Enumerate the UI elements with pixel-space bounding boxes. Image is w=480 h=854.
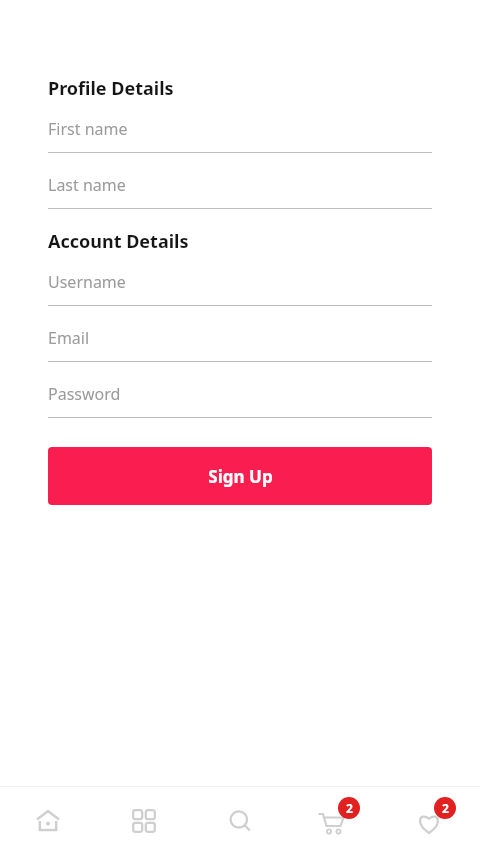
button[interactable]: Password [48, 382, 432, 418]
button[interactable]: First name [48, 117, 432, 153]
button[interactable]: Sign Up [48, 447, 432, 505]
button[interactable]: Home [0, 787, 96, 854]
staticText: Account Details [48, 229, 189, 254]
staticText: 2 [442, 800, 449, 816]
button[interactable]: Search [192, 787, 288, 854]
button[interactable]: Username [48, 270, 432, 306]
button[interactable]: Last name [48, 173, 432, 209]
button[interactable]: Favorites, 2 items [384, 787, 480, 854]
button[interactable]: Cart, 2 items [288, 787, 384, 854]
staticText: Email [48, 327, 90, 349]
staticText: Username [48, 271, 126, 293]
button[interactable]: Categories [96, 787, 192, 854]
staticText: 2 [346, 800, 353, 816]
staticText: Last name [48, 174, 126, 196]
button[interactable]: Email [48, 326, 432, 362]
staticText: Profile Details [48, 76, 174, 101]
staticText: Sign Up [208, 465, 273, 488]
staticText: Password [48, 383, 121, 405]
staticText: First name [48, 118, 128, 140]
